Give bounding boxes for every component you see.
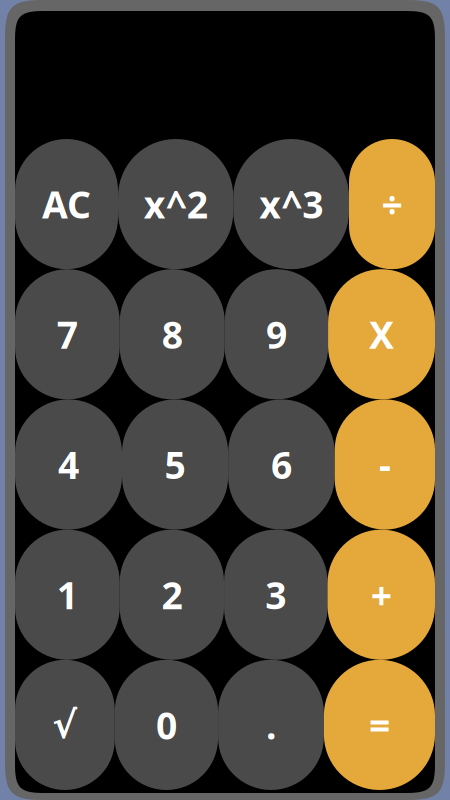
staticText: X [369, 309, 394, 359]
staticText: AC [42, 179, 91, 229]
button[interactable]: AC [15, 139, 118, 269]
button[interactable]: 8 [120, 269, 225, 399]
button[interactable]: √ [15, 660, 115, 790]
staticText: = [369, 700, 390, 750]
staticText: 2 [161, 570, 182, 619]
button[interactable]: 2 [120, 530, 224, 660]
button[interactable]: x^2 [118, 139, 233, 269]
staticText: 5 [165, 440, 186, 489]
button[interactable]: 4 [15, 399, 122, 530]
button[interactable]: X [328, 269, 435, 399]
button[interactable]: 7 [15, 269, 120, 399]
button[interactable]: x^3 [233, 139, 349, 269]
button[interactable]: + [327, 530, 435, 660]
button[interactable]: 5 [122, 399, 228, 530]
staticText: 9 [266, 309, 287, 359]
staticText: - [379, 440, 391, 489]
staticText: . [266, 700, 276, 750]
button[interactable]: 0 [115, 660, 218, 790]
staticText: ÷ [381, 179, 402, 229]
staticText: 1 [57, 570, 78, 619]
staticText: x^2 [144, 179, 208, 229]
staticText: 3 [265, 570, 286, 619]
button[interactable]: 1 [15, 530, 120, 660]
button[interactable]: 3 [224, 530, 327, 660]
staticText: 4 [58, 440, 79, 489]
button[interactable]: = [324, 660, 435, 790]
button[interactable]: . [218, 660, 324, 790]
button[interactable]: 6 [228, 399, 335, 530]
button[interactable]: - [335, 399, 435, 530]
staticText: 7 [57, 309, 78, 359]
staticText: + [371, 570, 392, 619]
staticText: x^3 [259, 179, 323, 229]
staticText: 0 [156, 700, 177, 750]
staticText: 6 [271, 440, 292, 489]
button[interactable]: ÷ [349, 139, 435, 269]
staticText: 8 [162, 309, 183, 359]
button[interactable]: 9 [225, 269, 328, 399]
staticText: √ [52, 704, 77, 746]
